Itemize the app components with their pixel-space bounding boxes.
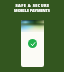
button[interactable]: Verified	[21, 20, 44, 67]
staticText: SAFE & SECURE	[15, 3, 50, 8]
staticText: MOBILE PAYMENTS	[14, 8, 50, 13]
other: Verified	[28, 39, 37, 48]
